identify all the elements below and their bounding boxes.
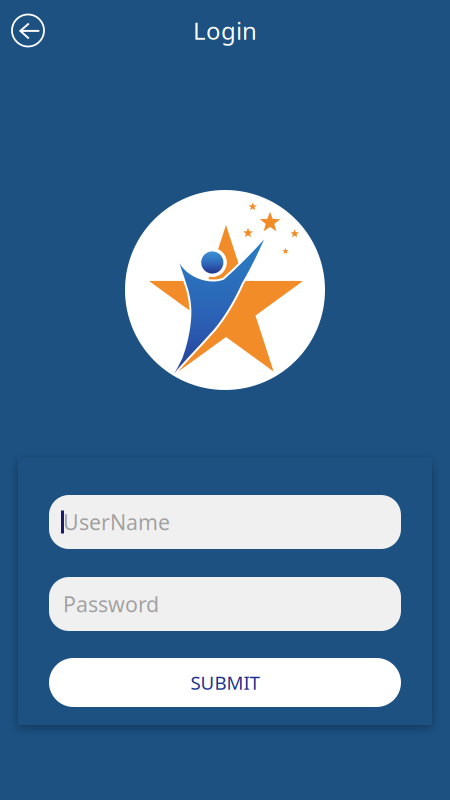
staticText: SUBMIT [190, 670, 259, 695]
button[interactable]: SUBMIT [49, 658, 401, 707]
button[interactable]: Back [10, 12, 46, 48]
staticText: UserName [63, 508, 170, 536]
staticText: Password [63, 590, 159, 618]
button[interactable]: UserName [49, 495, 401, 549]
staticText: Login [193, 15, 257, 46]
button[interactable]: Password [49, 577, 401, 631]
